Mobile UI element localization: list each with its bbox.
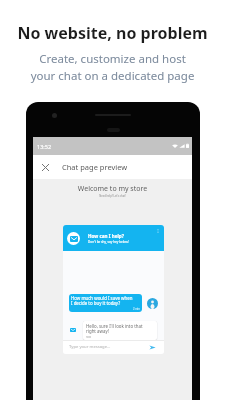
staticText: Don't be shy, say hey below! [88,240,129,244]
staticText: Type your message... [69,344,111,350]
button[interactable]: More options [154,227,162,235]
staticText: now [86,335,92,339]
button[interactable]: Send message [147,342,158,353]
staticText: 13:52 [37,143,52,150]
staticText: Welcome to my store [33,184,192,194]
staticText: Create, customize and host your chat on … [0,51,225,83]
staticText: How much would I save when I decide to b… [71,295,133,307]
button[interactable]: Type your message... [69,340,147,354]
button[interactable]: Close chat page preview [38,160,52,174]
button[interactable]: How can I help? [63,225,164,251]
staticText: How can I help? [88,233,124,239]
staticText: 2 min [133,307,140,311]
staticText: Chat page preview [62,162,128,172]
staticText: Need help? Let's chat! [33,194,192,198]
staticText: Hello, sure I'll look into that right aw… [86,323,143,335]
staticText: No website, no problem [0,22,225,44]
